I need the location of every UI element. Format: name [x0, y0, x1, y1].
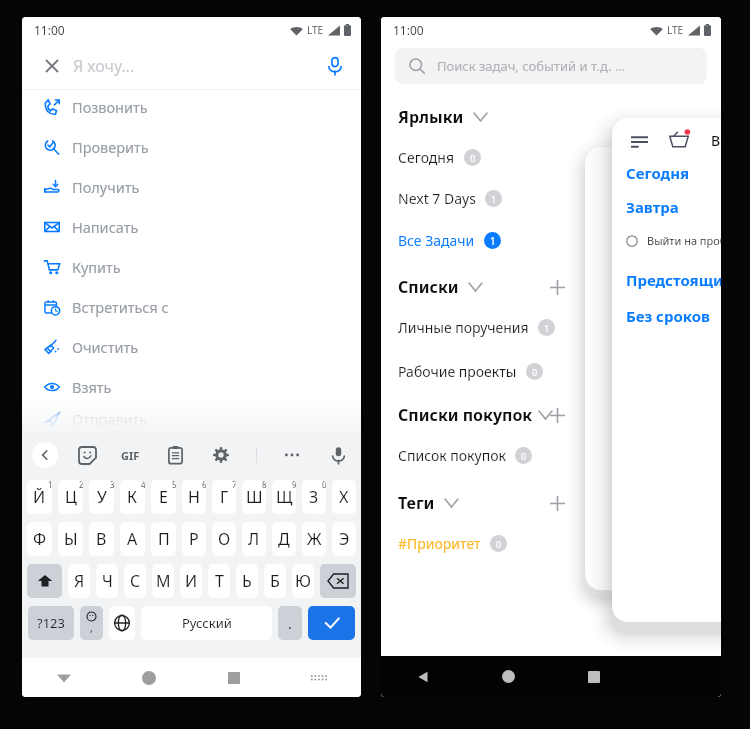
button[interactable]: Stickers [76, 444, 98, 466]
button[interactable]: Поиск задач, событий и т.д. ... [395, 48, 707, 84]
button[interactable]: Т [208, 564, 230, 598]
button[interactable]: Е [151, 480, 176, 514]
staticText: Списки [398, 276, 459, 298]
button[interactable]: Р [182, 522, 206, 556]
staticText: Купить [72, 257, 121, 277]
button[interactable]: Купить [22, 247, 361, 287]
button[interactable]: Очистить [22, 327, 361, 367]
button[interactable] [27, 564, 62, 598]
button[interactable]: Back [32, 442, 58, 468]
button[interactable]: Ш [242, 480, 266, 514]
button[interactable]: Сегодня [626, 163, 690, 183]
button[interactable]: GIF [121, 448, 140, 463]
button[interactable]: Home [466, 656, 551, 697]
button[interactable]: Списки [398, 276, 482, 298]
button[interactable]: З [302, 480, 326, 514]
button[interactable]: Clipboard [164, 444, 186, 466]
button[interactable]: Close [41, 55, 63, 77]
button[interactable]: Inbox [665, 125, 693, 153]
button[interactable]: Ф [27, 522, 52, 556]
button[interactable]: Settings [210, 444, 232, 466]
button[interactable]: Русский [141, 606, 272, 640]
button[interactable]: Получить [22, 167, 361, 207]
button[interactable]: Написать [22, 207, 361, 247]
button[interactable]: , [80, 606, 103, 640]
button[interactable]: О [212, 522, 236, 556]
button[interactable]: У [89, 480, 114, 514]
button[interactable]: ?123 [28, 606, 74, 640]
button[interactable]: Личные поручения [398, 314, 701, 340]
staticText: ?123 [37, 614, 65, 632]
button[interactable]: More [281, 444, 303, 466]
button[interactable]: Б [264, 564, 286, 598]
staticText: . [288, 614, 292, 633]
button[interactable]: Э [332, 522, 356, 556]
button[interactable]: Встретиться с [22, 287, 361, 327]
button[interactable]: П [151, 522, 176, 556]
staticText: 4 [141, 480, 145, 490]
button[interactable]: Ч [96, 564, 118, 598]
button[interactable]: Х [332, 480, 356, 514]
button[interactable]: Back [381, 656, 466, 697]
button[interactable]: Позвонить [22, 87, 361, 127]
button[interactable]: Завтра [626, 197, 679, 217]
button[interactable]: Г [212, 480, 236, 514]
button[interactable]: Ь [236, 564, 258, 598]
button[interactable]: Теги [398, 492, 458, 514]
button[interactable]: #Приоритет [398, 530, 701, 556]
button[interactable]: В [89, 522, 114, 556]
staticText: 1 [544, 322, 550, 334]
button[interactable]: Back [22, 658, 106, 697]
button[interactable]: Add [548, 494, 566, 512]
button[interactable]: Без сроков [626, 306, 711, 326]
button[interactable]: Voice input [323, 54, 347, 78]
button[interactable]: Щ [272, 480, 296, 514]
button[interactable]: Я [68, 564, 90, 598]
button[interactable]: Н [182, 480, 206, 514]
button[interactable]: Предстоящие [626, 270, 721, 290]
button[interactable]: Взять [22, 367, 361, 407]
button[interactable]: Й [27, 480, 52, 514]
button[interactable]: Add [548, 406, 566, 424]
button[interactable]: Recents [191, 658, 276, 697]
button[interactable]: Home [106, 658, 191, 697]
button[interactable]: М [152, 564, 174, 598]
button[interactable]: Проверить [22, 127, 361, 167]
button[interactable]: Ц [58, 480, 83, 514]
button[interactable]: Выйти на пробе [626, 233, 721, 248]
button[interactable]: Все Задачи [398, 227, 701, 253]
button[interactable]: Л [242, 522, 266, 556]
button[interactable] [320, 564, 356, 598]
button[interactable]: А [120, 522, 145, 556]
button[interactable]: . [278, 606, 302, 640]
button[interactable]: Списки покупок [398, 404, 552, 426]
button[interactable]: Ю [292, 564, 314, 598]
button[interactable]: Add [548, 278, 566, 296]
button[interactable]: Список покупок [398, 442, 701, 468]
button[interactable]: Отправить [22, 407, 361, 431]
button[interactable]: Keyboard [276, 658, 361, 697]
staticText: Рабочие проекты [398, 362, 517, 381]
staticText: П [158, 528, 170, 550]
button[interactable]: С [124, 564, 146, 598]
button[interactable]: Ярлыки [398, 106, 487, 128]
staticText: Р [189, 528, 199, 550]
staticText: , [90, 621, 93, 635]
button[interactable]: К [120, 480, 145, 514]
button[interactable]: Рабочие проекты [398, 358, 701, 384]
button[interactable] [308, 606, 355, 640]
button[interactable]: Ж [302, 522, 326, 556]
button[interactable]: Close [22, 43, 361, 89]
button[interactable]: Next 7 Days [398, 185, 701, 211]
button[interactable]: Voice [327, 444, 349, 466]
button[interactable] [109, 606, 135, 640]
button[interactable]: И [180, 564, 202, 598]
button[interactable]: Menu [627, 130, 651, 154]
button[interactable]: Сегодня [398, 144, 701, 170]
staticText: 0 [521, 450, 527, 462]
staticText: К [127, 486, 138, 508]
button[interactable]: Ы [58, 522, 83, 556]
button[interactable]: Recents [551, 656, 636, 697]
button[interactable]: Д [272, 522, 296, 556]
button[interactable]: Вс [711, 131, 721, 150]
